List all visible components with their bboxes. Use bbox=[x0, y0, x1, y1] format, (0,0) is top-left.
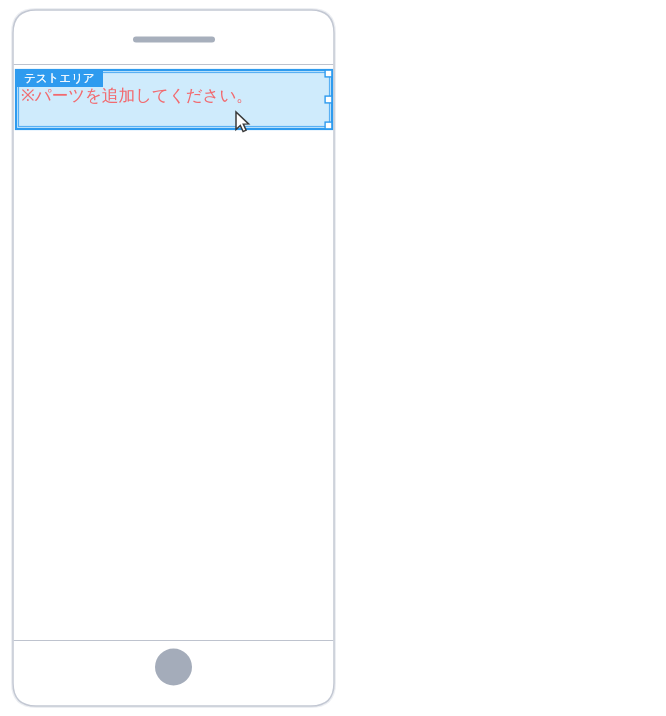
button[interactable]: テストエリア 選択範囲 bbox=[0, 0, 666, 716]
